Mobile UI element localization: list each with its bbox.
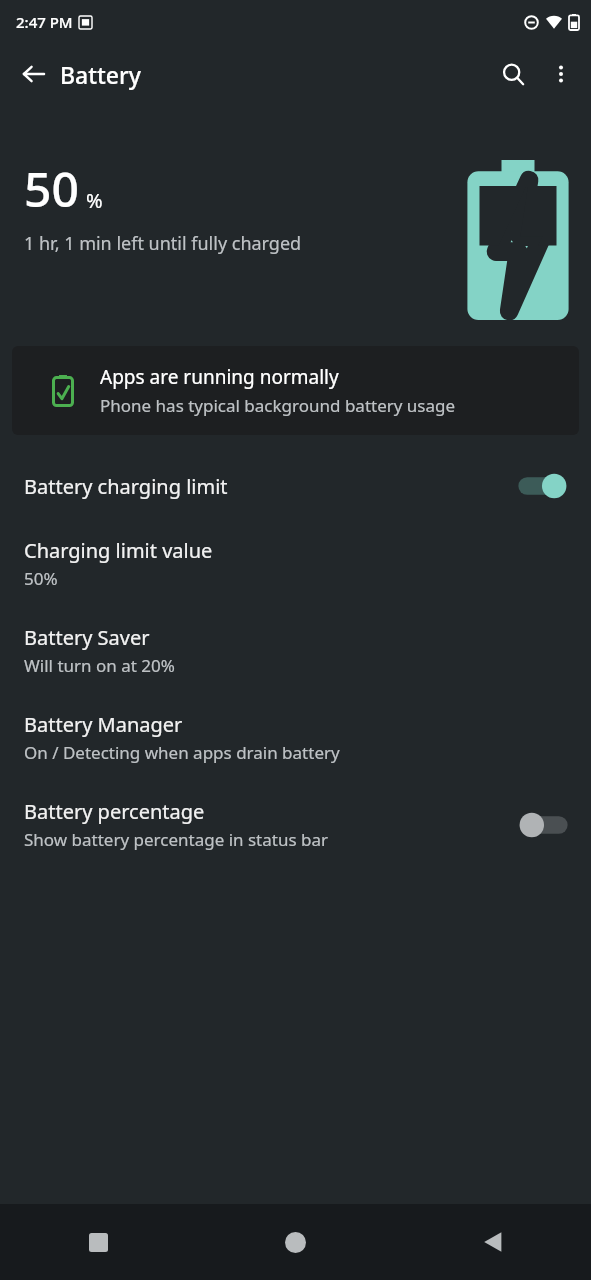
staticText: 2:47 PM (16, 12, 73, 32)
staticText: Apps are running normally (100, 364, 339, 390)
staticText: 50 (24, 156, 79, 221)
button[interactable]: Apps are running normally (12, 346, 579, 435)
staticText: Will turn on at 20% (24, 654, 175, 677)
staticText: On / Detecting when apps drain battery (24, 741, 340, 764)
button[interactable]: Home (197, 1204, 394, 1280)
button[interactable]: More options (537, 50, 585, 98)
button[interactable]: Recents (0, 1204, 197, 1280)
staticText: Battery charging limit (24, 473, 228, 500)
staticText: Battery Manager (24, 711, 183, 738)
button[interactable]: Battery charging limit (0, 451, 591, 519)
button[interactable]: Search (489, 50, 537, 98)
staticText: Battery (60, 59, 141, 90)
staticText: Battery percentage (24, 798, 205, 825)
staticText: % (86, 187, 103, 214)
staticText: Battery Saver (24, 624, 150, 651)
button[interactable]: Back (10, 50, 58, 98)
staticText: Charging limit value (24, 537, 213, 564)
staticText: Phone has typical background battery usa… (100, 394, 456, 417)
button[interactable]: Toggle on (515, 469, 571, 503)
button[interactable]: Charging limit value (0, 519, 591, 606)
button[interactable]: Battery percentage (0, 780, 591, 867)
button[interactable]: Battery Manager (0, 693, 591, 780)
staticText: Show battery percentage in status bar (24, 828, 328, 851)
button[interactable]: Battery Saver (0, 606, 591, 693)
button[interactable]: Toggle off (515, 808, 571, 842)
staticText: 1 hr, 1 min left until fully charged (24, 231, 302, 256)
button[interactable]: Back (394, 1204, 591, 1280)
staticText: 50% (24, 567, 58, 590)
